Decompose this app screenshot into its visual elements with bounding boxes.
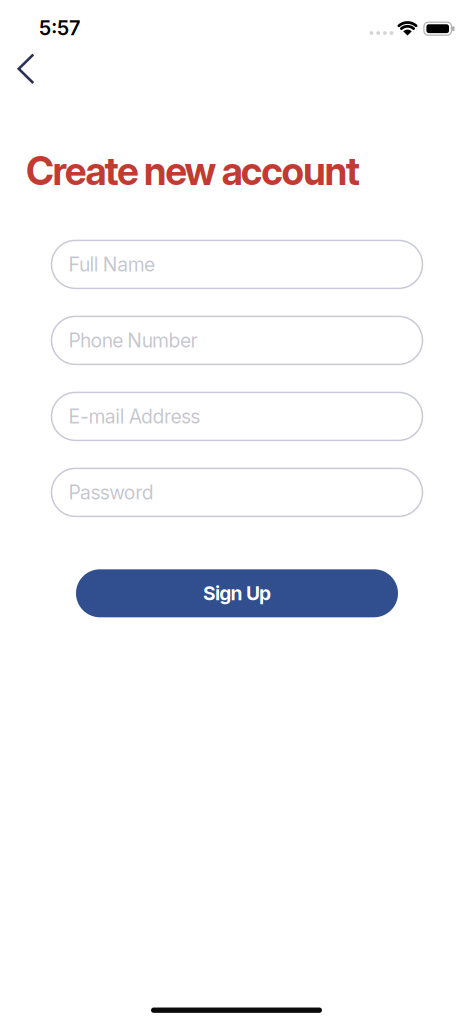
staticText: Password <box>68 481 154 504</box>
button[interactable]: E-mail Address <box>51 392 422 440</box>
button[interactable]: Sign Up <box>76 569 398 617</box>
staticText: Phone Number <box>68 329 197 352</box>
staticText: Full Name <box>68 253 155 276</box>
button[interactable]: Phone Number <box>51 316 422 364</box>
staticText: Create new account <box>26 148 360 194</box>
staticText: 5:57 <box>39 16 80 40</box>
button[interactable]: Full Name <box>51 240 422 288</box>
button[interactable]: Password <box>51 468 422 516</box>
button[interactable]: Back <box>4 47 48 91</box>
staticText: Sign Up <box>203 582 271 605</box>
staticText: E-mail Address <box>68 405 200 428</box>
